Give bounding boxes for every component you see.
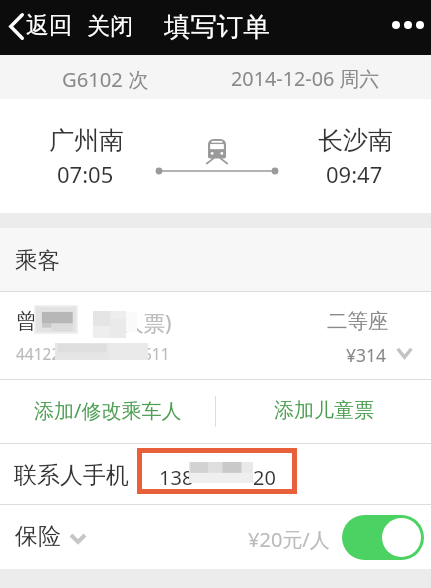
button[interactable]: 曾 <box>0 292 431 379</box>
staticText: 返回 <box>26 11 72 40</box>
staticText: 保险 <box>15 522 61 551</box>
staticText: 广州南 <box>49 125 124 156</box>
button[interactable]: 添加/修改乘车人 <box>0 380 215 443</box>
staticText: 添加儿童票 <box>274 398 374 423</box>
staticText: 07:05 <box>57 159 114 189</box>
staticText: 关闭 <box>87 12 133 41</box>
button[interactable]: 添加儿童票 <box>216 380 431 443</box>
staticText: 添加/修改乘车人 <box>34 397 182 424</box>
staticText: 2014-12-06 周六 <box>231 65 380 92</box>
staticText: (成人票) <box>94 308 172 337</box>
staticText: 20 <box>253 464 276 491</box>
staticText: 09:47 <box>326 159 383 189</box>
button[interactable]: 138 <box>142 453 292 489</box>
button[interactable]: Insurance toggle <box>342 515 424 560</box>
staticText: 填写订单 <box>164 10 270 43</box>
button[interactable]: More options <box>385 5 431 45</box>
button[interactable]: 返回 <box>0 12 75 41</box>
button[interactable]: 关闭 <box>83 7 137 48</box>
staticText: 曾 <box>16 308 37 334</box>
staticText: 44122 <box>16 343 61 364</box>
staticText: 511 <box>143 343 170 364</box>
staticText: 长沙南 <box>318 125 393 156</box>
staticText: ¥314 <box>346 343 387 367</box>
staticText: ¥20元/人 <box>248 526 330 553</box>
staticText: 乘客 <box>15 246 60 274</box>
staticText: 138 <box>159 464 194 491</box>
button[interactable]: 保险 <box>0 523 93 552</box>
staticText: G6102 次 <box>62 65 149 93</box>
staticText: 二等座 <box>327 308 389 334</box>
staticText: 联系人手机 <box>14 461 129 490</box>
